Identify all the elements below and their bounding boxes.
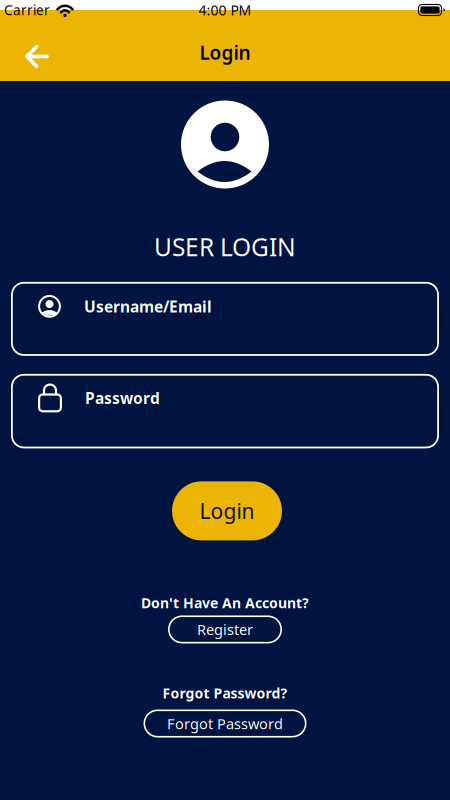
button[interactable]: Register [168,615,282,643]
staticText: Login [199,497,254,525]
staticText: Forgot Password? [162,683,287,702]
button[interactable] [15,34,59,78]
staticText: Forgot Password [167,714,283,733]
staticText: Login [199,39,250,65]
staticText: Register [197,620,253,639]
staticText: 4:00 PM [198,0,251,20]
staticText: Password [85,387,160,408]
staticText: USER LOGIN [154,230,296,263]
staticText: Carrier [4,1,50,19]
staticText: Username/Email [84,296,212,317]
button[interactable]: Username/Email [11,282,439,356]
button[interactable]: Password [11,374,439,448]
staticText: Don't Have An Account? [141,593,309,612]
button[interactable]: Login [172,481,282,540]
button[interactable]: Forgot Password [143,709,306,737]
